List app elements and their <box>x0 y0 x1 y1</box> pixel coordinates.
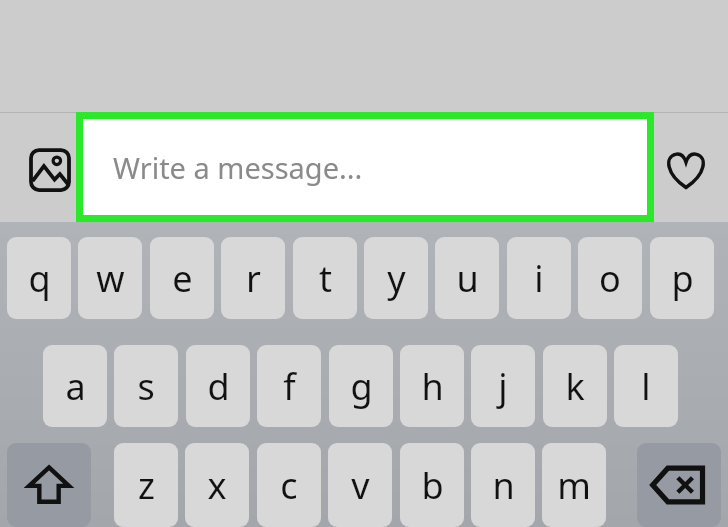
button[interactable]: q <box>7 237 71 319</box>
staticText: y <box>387 254 406 303</box>
staticText: v <box>351 461 370 510</box>
staticText: w <box>96 254 125 303</box>
staticText: p <box>671 254 694 303</box>
button[interactable]: e <box>150 237 214 319</box>
button[interactable]: Backspace <box>637 443 721 527</box>
button[interactable]: o <box>578 237 642 319</box>
staticText: u <box>456 254 479 303</box>
button[interactable]: Shift <box>7 443 91 527</box>
button[interactable]: w <box>78 237 142 319</box>
button[interactable]: d <box>186 345 250 427</box>
staticText: e <box>172 254 193 303</box>
staticText: x <box>207 461 227 510</box>
staticText: g <box>350 362 373 411</box>
button[interactable]: l <box>614 345 678 427</box>
staticText: i <box>534 254 544 303</box>
staticText: n <box>492 461 515 510</box>
button[interactable]: u <box>435 237 499 319</box>
staticText: r <box>246 254 261 303</box>
button[interactable]: Write a message... <box>83 119 647 215</box>
button[interactable]: y <box>364 237 428 319</box>
button[interactable]: v <box>328 443 392 527</box>
button[interactable]: Like <box>658 142 714 198</box>
button[interactable]: f <box>257 345 321 427</box>
button[interactable]: r <box>221 237 285 319</box>
staticText: s <box>137 362 155 411</box>
staticText: z <box>138 461 155 510</box>
staticText: h <box>421 362 444 411</box>
staticText: t <box>319 254 332 303</box>
button[interactable]: x <box>185 443 249 527</box>
button[interactable]: t <box>293 237 357 319</box>
staticText: d <box>207 362 230 411</box>
staticText: m <box>557 461 591 510</box>
button[interactable]: g <box>329 345 393 427</box>
button[interactable]: m <box>542 443 606 527</box>
button[interactable]: i <box>507 237 571 319</box>
button[interactable]: c <box>257 443 321 527</box>
staticText: c <box>280 461 298 510</box>
staticText: b <box>421 461 444 510</box>
staticText: a <box>65 362 86 411</box>
staticText: j <box>498 362 508 411</box>
staticText: q <box>28 254 51 303</box>
button[interactable]: k <box>543 345 607 427</box>
staticText: k <box>565 362 585 411</box>
button[interactable]: p <box>650 237 714 319</box>
staticText: o <box>599 254 621 303</box>
staticText: Write a message... <box>113 148 363 187</box>
button[interactable]: h <box>400 345 464 427</box>
button[interactable]: Attach image <box>22 142 78 198</box>
staticText: f <box>283 362 296 411</box>
button[interactable]: b <box>400 443 464 527</box>
button[interactable]: j <box>471 345 535 427</box>
button[interactable]: a <box>43 345 107 427</box>
button[interactable]: n <box>471 443 535 527</box>
staticText: l <box>641 362 651 411</box>
button[interactable]: z <box>114 443 178 527</box>
button[interactable]: s <box>114 345 178 427</box>
